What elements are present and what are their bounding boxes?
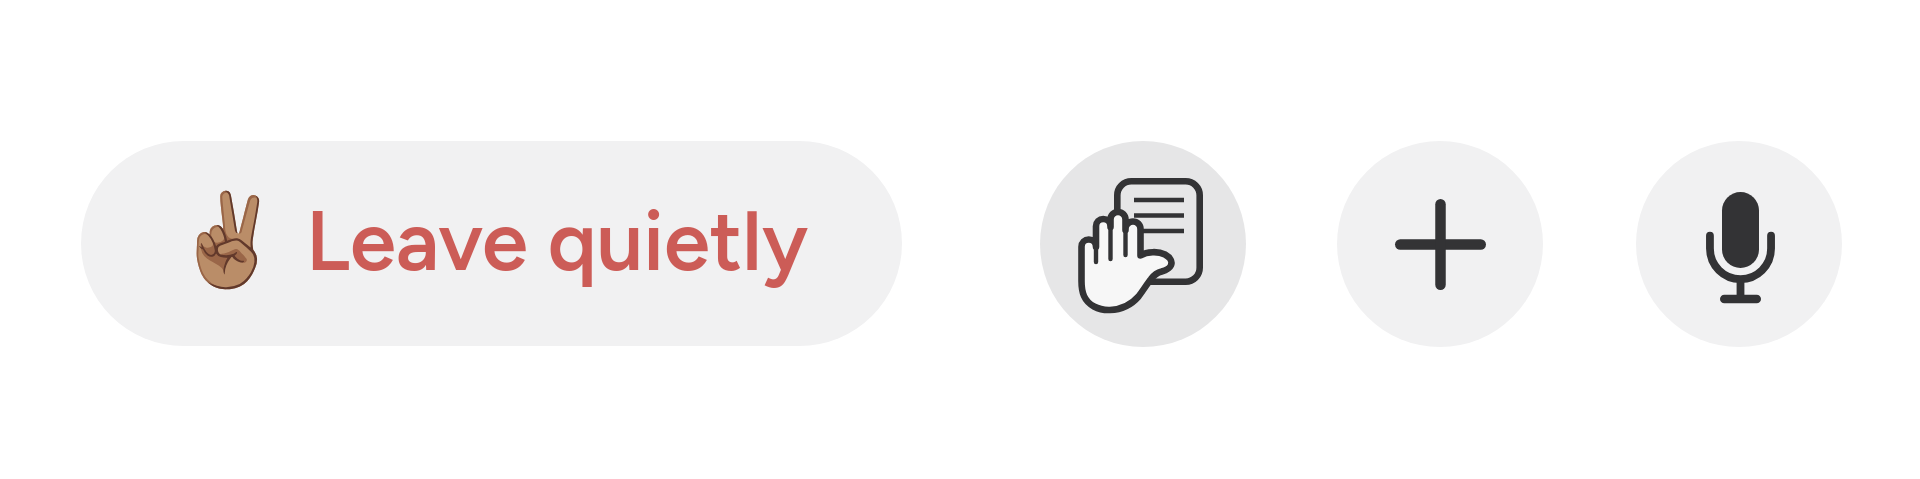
button[interactable]: Microphone: [1636, 141, 1842, 347]
button[interactable]: ✌️🏽: [81, 141, 902, 346]
staticText: ✌️🏽: [172, 188, 285, 293]
staticText: Leave quietly: [306, 191, 809, 291]
button[interactable]: Raise hand: [1040, 141, 1246, 347]
button[interactable]: Add: [1337, 141, 1543, 347]
